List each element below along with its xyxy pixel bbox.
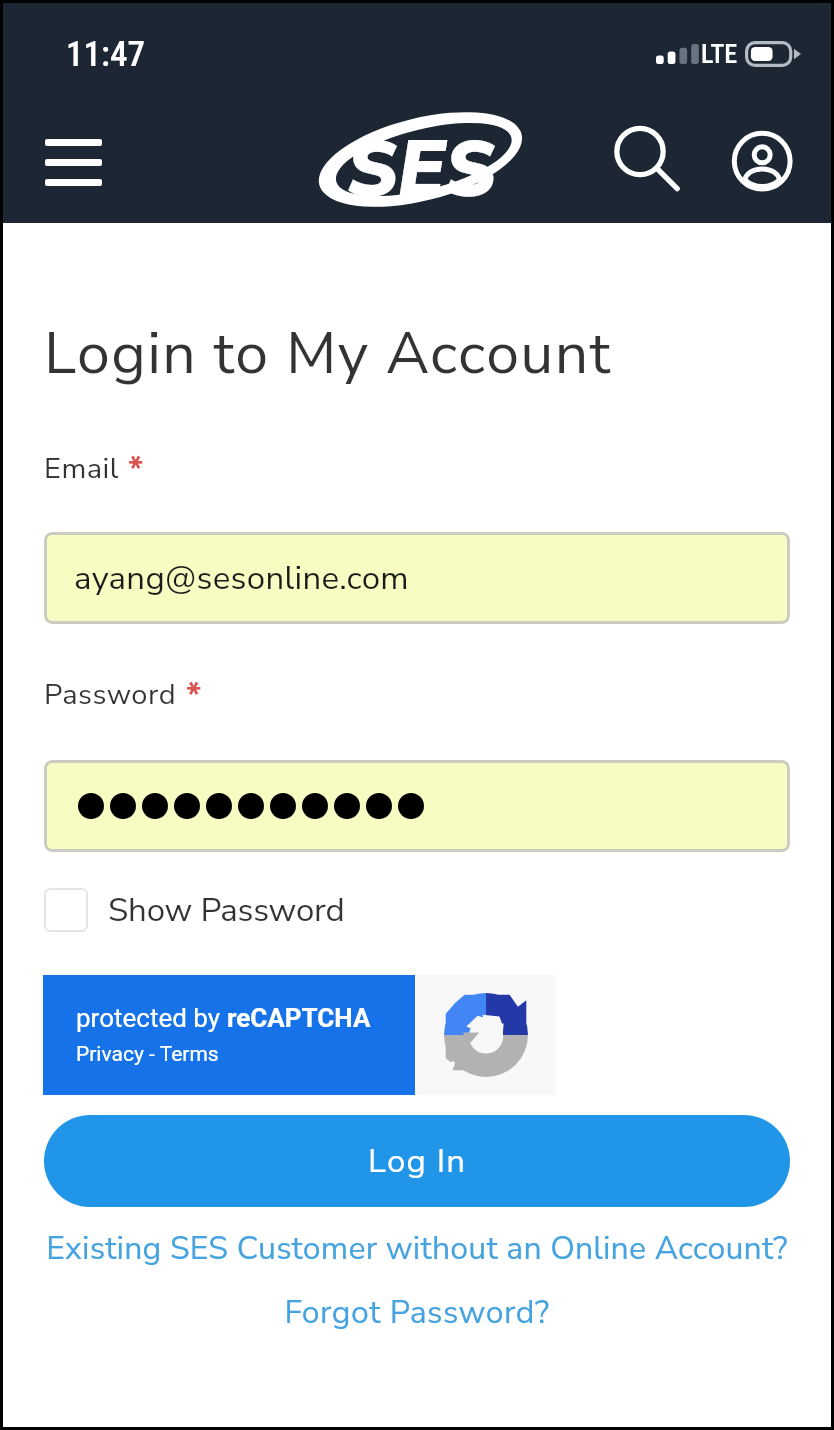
button[interactable]: ayang@sesonline.com: [44, 532, 790, 624]
staticText: Log In: [368, 1139, 467, 1184]
staticText: LTE: [701, 39, 738, 69]
button[interactable]: protected by: [43, 975, 557, 1095]
staticText: Email: [44, 449, 119, 489]
button[interactable]: Forgot Password?: [3, 1285, 831, 1341]
staticText: Show Password: [108, 888, 345, 933]
staticText: SES: [347, 116, 496, 222]
staticText: protected by: [76, 1003, 227, 1033]
button[interactable]: Existing SES Customer without an Online …: [3, 1221, 831, 1277]
button[interactable]: Open navigation menu: [20, 115, 127, 209]
button[interactable]: [44, 760, 790, 852]
button[interactable]: My account: [726, 125, 800, 199]
staticText: ayang@sesonline.com: [74, 556, 409, 601]
staticText: reCAPTCHA: [227, 1003, 371, 1033]
button[interactable]: Search: [608, 119, 686, 197]
button[interactable]: SES home: [313, 109, 528, 217]
staticText: Existing SES Customer without an Online …: [46, 1227, 788, 1271]
staticText: *: [128, 447, 144, 493]
staticText: 11:47: [66, 34, 145, 75]
staticText: Login to My Account: [44, 313, 612, 393]
staticText: Forgot Password?: [284, 1291, 550, 1335]
staticText: *: [186, 673, 202, 719]
staticText: Privacy - Terms: [76, 1042, 219, 1067]
button[interactable]: Show Password: [44, 886, 345, 934]
staticText: Password: [44, 675, 177, 715]
button[interactable]: Log In: [44, 1115, 790, 1207]
